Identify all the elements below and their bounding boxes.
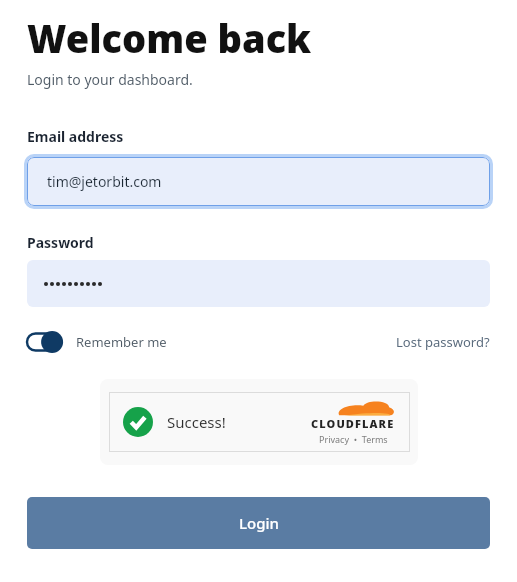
button[interactable]: Login xyxy=(27,497,490,549)
button[interactable]: Success! xyxy=(100,379,418,465)
button[interactable]: Lost password? xyxy=(396,333,490,351)
staticText: Login to your dashboard. xyxy=(27,70,193,89)
button[interactable] xyxy=(27,260,490,307)
staticText: Password xyxy=(27,233,94,252)
button[interactable]: Remember me toggle, on xyxy=(27,331,167,353)
staticText: tim@jetorbit.com xyxy=(47,172,162,191)
staticText: Privacy • Terms xyxy=(319,433,388,445)
staticText: Success! xyxy=(167,412,226,432)
staticText: Login xyxy=(239,513,279,533)
staticText: CLOUDFLARE xyxy=(311,416,395,431)
button[interactable]: tim@jetorbit.com xyxy=(27,157,490,206)
staticText: Remember me xyxy=(76,333,167,351)
other: Remember me toggle, on xyxy=(27,331,65,353)
staticText: Welcome back xyxy=(27,12,312,64)
staticText: Email address xyxy=(27,127,124,146)
staticText: Lost password? xyxy=(396,333,490,351)
